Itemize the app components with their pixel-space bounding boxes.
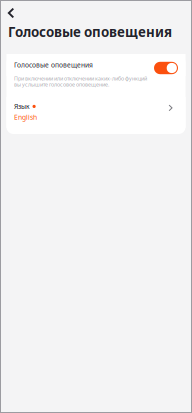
staticText: Язык [14, 102, 30, 111]
staticText: Голосовые оповещения [8, 23, 172, 41]
button[interactable]: Back [0, 3, 26, 23]
button[interactable]: Язык [6, 97, 185, 128]
staticText: Голосовые оповещения [14, 61, 93, 69]
staticText: При включении или отключении каких-либо … [14, 75, 147, 88]
staticText: English [14, 113, 37, 122]
button[interactable]: Голосовые оповещения [6, 54, 185, 76]
